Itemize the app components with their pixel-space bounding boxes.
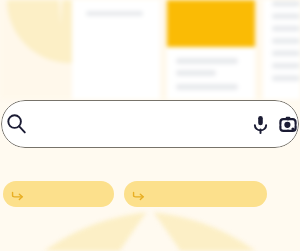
- other: Recent search: [132, 188, 145, 201]
- button[interactable]: Search: [1, 100, 299, 148]
- button[interactable]: Recent search: [3, 181, 114, 207]
- other: Search: [7, 114, 27, 134]
- button[interactable]: Recent search: [124, 181, 267, 207]
- other: Recent search: [11, 188, 24, 201]
- button[interactable]: Search with Google Lens: [278, 114, 298, 134]
- button[interactable]: Voice search: [249, 113, 272, 136]
